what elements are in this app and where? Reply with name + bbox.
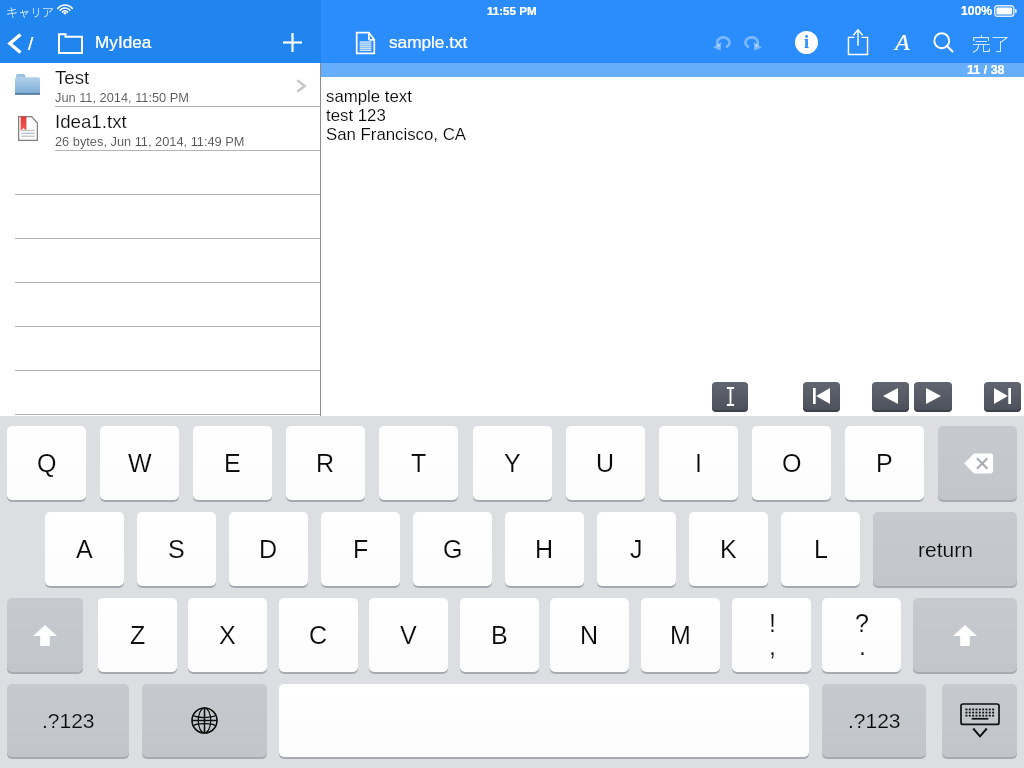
button[interactable]: Select text [712, 382, 748, 410]
staticText: test 123 [326, 106, 386, 125]
staticText: U [596, 449, 615, 477]
button[interactable]: O [752, 426, 831, 500]
button[interactable]: R [286, 426, 365, 500]
staticText: J [630, 535, 643, 563]
staticText: X [219, 621, 236, 649]
button[interactable]: M [641, 598, 720, 672]
button[interactable]: Y [473, 426, 552, 500]
button[interactable]: Share [840, 22, 876, 63]
button[interactable] [0, 239, 320, 283]
staticText: 26 bytes, Jun 11, 2014, 11:49 PM [55, 134, 245, 148]
staticText: W [128, 449, 152, 477]
button[interactable]: .?123 [822, 684, 926, 757]
button[interactable] [0, 327, 320, 371]
button[interactable]: return [873, 512, 1017, 586]
button[interactable]: Hide keyboard [942, 684, 1017, 757]
button[interactable]: J [597, 512, 676, 586]
button[interactable]: sample.txt [355, 22, 468, 63]
button[interactable] [0, 151, 320, 195]
staticText: L [814, 535, 828, 563]
staticText: Y [504, 449, 521, 477]
staticText: 11:55 PM [487, 4, 537, 17]
button[interactable]: E [193, 426, 272, 500]
staticText: O [782, 449, 802, 477]
staticText: 100% [961, 4, 992, 18]
button[interactable] [0, 371, 320, 415]
button[interactable]: Switch keyboard [142, 684, 267, 757]
button[interactable]: W [100, 426, 179, 500]
button[interactable]: C [279, 598, 358, 672]
button[interactable]: Info [788, 22, 824, 63]
button[interactable]: K [689, 512, 768, 586]
button[interactable]: V [369, 598, 448, 672]
staticText: 11 / 38 [967, 63, 1005, 77]
staticText: / [28, 33, 34, 54]
button[interactable]: N [550, 598, 629, 672]
button[interactable]: B [460, 598, 539, 672]
button[interactable]: S [137, 512, 216, 586]
button[interactable]: .?123 [7, 684, 129, 757]
staticText: .?123 [848, 709, 901, 732]
staticText: M [670, 621, 691, 649]
staticText: A [76, 535, 93, 563]
button[interactable] [0, 195, 320, 239]
button[interactable]: Move right [914, 382, 952, 410]
button[interactable]: D [229, 512, 308, 586]
button[interactable]: Redo [735, 22, 771, 63]
button[interactable]: H [505, 512, 584, 586]
staticText: G [443, 535, 463, 563]
staticText: San Francisco, CA [326, 125, 467, 144]
staticText: キャリア [6, 3, 55, 20]
staticText: K [720, 535, 737, 563]
staticText: V [400, 621, 417, 649]
staticText: S [168, 535, 185, 563]
staticText: . [859, 632, 866, 660]
button[interactable] [0, 283, 320, 327]
staticText: .?123 [42, 709, 95, 732]
staticText: Idea1.txt [55, 111, 127, 132]
button[interactable]: Q [7, 426, 86, 500]
button[interactable]: ! [732, 598, 811, 672]
button[interactable]: Test [0, 63, 320, 107]
button[interactable]: X [188, 598, 267, 672]
button[interactable]: 完了 [964, 22, 1018, 63]
button[interactable]: Search [925, 22, 961, 63]
button[interactable]: A [45, 512, 124, 586]
staticText: E [224, 449, 241, 477]
button[interactable]: Add [272, 22, 312, 63]
staticText: R [316, 449, 335, 477]
staticText: sample text [326, 87, 412, 106]
button[interactable]: MyIdea [58, 22, 152, 63]
button[interactable]: L [781, 512, 860, 586]
staticText: i [804, 32, 810, 52]
staticText: F [353, 535, 369, 563]
button[interactable]: G [413, 512, 492, 586]
button[interactable]: Shift [913, 598, 1017, 672]
button[interactable]: Undo [703, 22, 739, 63]
button[interactable]: Start of line [803, 382, 840, 410]
button[interactable]: Back [0, 22, 52, 63]
staticText: Jun 11, 2014, 11:50 PM [55, 90, 189, 104]
button[interactable]: Backspace [938, 426, 1017, 500]
staticText: H [535, 535, 554, 563]
button[interactable]: U [566, 426, 645, 500]
button[interactable]: End of line [984, 382, 1021, 410]
button[interactable]: Font size [884, 22, 920, 63]
staticText: Test [55, 67, 90, 88]
button[interactable]: T [379, 426, 458, 500]
staticText: A [895, 29, 910, 56]
button[interactable]: I [659, 426, 738, 500]
button[interactable]: F [321, 512, 400, 586]
button[interactable]: Shift [7, 598, 83, 672]
button[interactable]: ? [822, 598, 901, 672]
staticText: C [309, 621, 328, 649]
button[interactable]: P [845, 426, 924, 500]
button[interactable]: Idea1.txt [0, 107, 320, 151]
staticText: 完了 [972, 29, 1011, 57]
staticText: B [491, 621, 508, 649]
button[interactable]: Move left [872, 382, 909, 410]
staticText: Q [37, 449, 57, 477]
button[interactable]: Z [98, 598, 177, 672]
staticText: ? [855, 609, 869, 637]
